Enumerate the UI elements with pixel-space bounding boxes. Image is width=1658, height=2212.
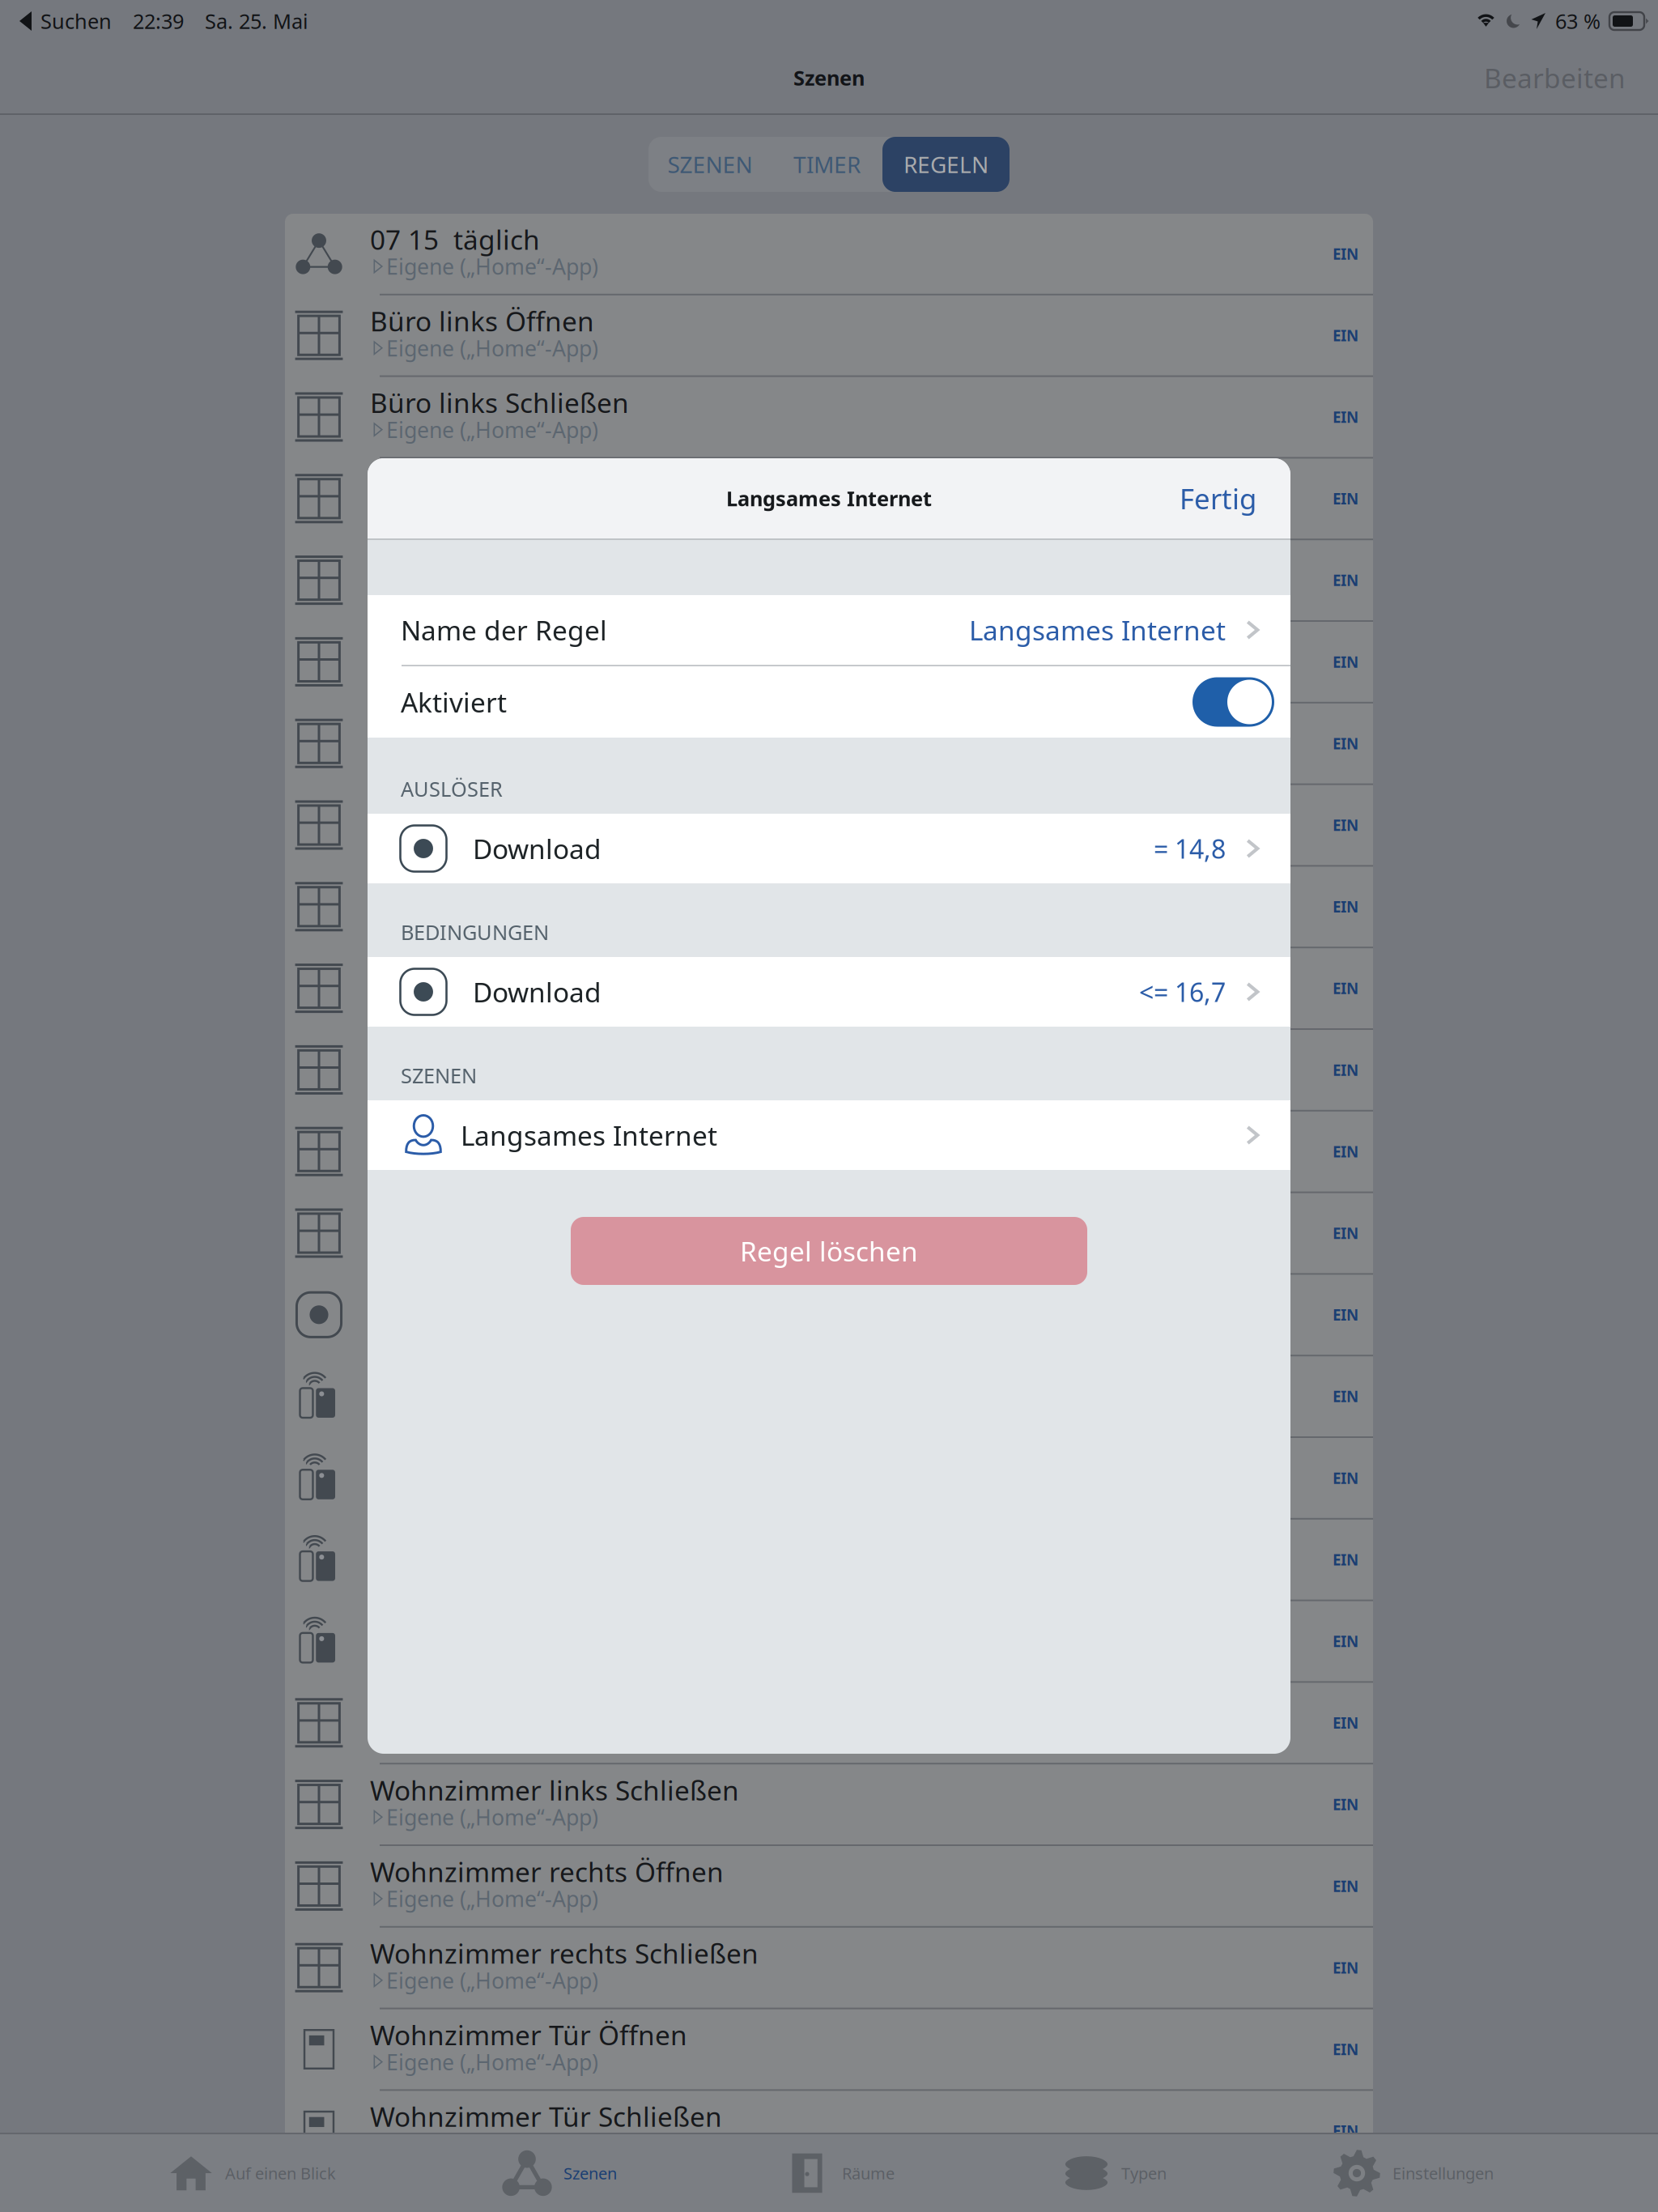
staticText: Büro links Öffnen — [370, 303, 594, 339]
button[interactable]: Wohnzimmer rechts Schließen — [285, 1928, 1373, 2008]
staticText: EIN — [1333, 570, 1358, 590]
button[interactable]: Küche rechts Öffnen — [285, 785, 1373, 865]
button[interactable]: Küche links Schließen — [285, 703, 1373, 783]
staticText: EIN — [1333, 489, 1358, 509]
staticText: EIN — [1333, 1223, 1358, 1243]
button[interactable]: Küche links Öffnen — [285, 622, 1373, 702]
button[interactable]: REGELN — [882, 137, 1010, 192]
staticText: BEDINGUNGEN — [401, 918, 549, 946]
button[interactable]: Bearbeiten — [1484, 42, 1658, 113]
button[interactable]: Wohnzimmer Tür Schließen — [285, 2091, 1373, 2171]
button[interactable]: 07 15 täglich — [285, 214, 1373, 294]
button[interactable]: Schlafzimmer Schließen — [285, 1030, 1373, 1110]
staticText: Küche links Schließen — [370, 711, 647, 747]
button[interactable]: Regel löschen — [571, 1217, 1087, 1285]
staticText: Wohnzimmer links Schließen — [370, 1772, 739, 1808]
button[interactable]: Küche rechts Schließen — [285, 867, 1373, 947]
staticText: <= 16,7 — [1139, 975, 1226, 1009]
button[interactable]: Wohnzimmer Tür Öffnen — [285, 2009, 1373, 2089]
button[interactable]: Wohnzimmer rechts Öffnen — [285, 1846, 1373, 1926]
staticText: Eigene („Home“-App) — [386, 252, 598, 281]
staticText: Langsames Internet — [726, 485, 932, 512]
staticText: Auf einen Blick — [225, 2162, 336, 2184]
button[interactable]: Büro links Öffnen — [285, 295, 1373, 375]
staticText: Eigene („Home“-App) — [386, 1803, 598, 1831]
staticText: Download — [473, 974, 602, 1010]
staticText: Aktiviert — [401, 684, 507, 720]
button[interactable]: Typen — [1063, 2134, 1306, 2212]
button[interactable]: Taster 1 Öffnen — [285, 1356, 1373, 1436]
staticText: 22:39 — [133, 7, 184, 35]
staticText: Wohnzimmer Tür Öffnen — [370, 2017, 687, 2053]
button[interactable]: Bad Schließen — [285, 1193, 1373, 1273]
staticText: EIN — [1333, 1631, 1358, 1651]
staticText: Eigene („Home“-App) — [386, 1966, 598, 1995]
button[interactable]: Wohnzimmer links Öffnen — [285, 1683, 1373, 1763]
button[interactable]: Name der Regel — [368, 595, 1290, 665]
staticText: Eigene („Home“-App) — [386, 415, 598, 444]
staticText: REGELN — [903, 149, 988, 179]
staticText: EIN — [1333, 325, 1358, 345]
button[interactable]: Büro rechts Öffnen — [285, 459, 1373, 539]
staticText: Wohnzimmer Tür Schließen — [370, 2098, 722, 2134]
button[interactable]: Fertig — [1180, 458, 1290, 538]
button[interactable]: Langsames Internet — [368, 1100, 1290, 1170]
staticText: Regel löschen — [740, 1233, 918, 1269]
button[interactable]: Taster 3 Öffnen — [285, 1520, 1373, 1600]
button[interactable]: Taster 4 Öffnen — [285, 1601, 1373, 1681]
staticText: Bearbeiten — [1484, 60, 1626, 96]
button[interactable]: SZENEN — [648, 137, 772, 192]
staticText: EIN — [1333, 1794, 1358, 1814]
button[interactable]: Einstellungen — [1333, 2134, 1575, 2212]
staticText: Einstellungen — [1392, 2162, 1494, 2184]
staticText: Eigene („Home“-App) — [386, 1231, 598, 1260]
staticText: EIN — [1333, 1305, 1358, 1325]
button[interactable]: Auf einen Blick — [168, 2134, 411, 2212]
button[interactable]: Wohnzimmer links Schließen — [285, 1764, 1373, 1844]
button[interactable]: Download — [368, 957, 1290, 1027]
staticText: EIN — [1333, 1713, 1358, 1733]
staticText: Eigene („Home“-App) — [386, 334, 598, 362]
button[interactable]: Schlafzimmer Öffnen — [285, 948, 1373, 1028]
staticText: EIN — [1333, 1386, 1358, 1406]
button[interactable]: Taster 2 Öffnen — [285, 1438, 1373, 1518]
staticText: Wohnzimmer rechts Schließen — [370, 1935, 759, 1971]
button[interactable]: Download — [368, 814, 1290, 883]
staticText: EIN — [1333, 407, 1358, 427]
button[interactable]: Bad Öffnen — [285, 1112, 1373, 1192]
button[interactable]: Büro rechts Schließen — [285, 540, 1373, 620]
button[interactable]: Büro links Schließen — [285, 377, 1373, 457]
staticText: Langsames Internet — [969, 612, 1226, 648]
staticText: Eigene („Home“-App) — [386, 905, 598, 934]
button[interactable]: Szenen — [502, 2134, 745, 2212]
staticText: EIN — [1333, 1550, 1358, 1570]
staticText: EIN — [1333, 897, 1358, 917]
staticText: EIN — [1333, 733, 1358, 753]
staticText: EIN — [1333, 1141, 1358, 1162]
staticText: SZENEN — [401, 1062, 477, 1089]
staticText: Sa. 25. Mai — [205, 7, 308, 35]
staticText: EIN — [1333, 244, 1358, 264]
button[interactable]: Bewegung Flur — [285, 1275, 1373, 1355]
button[interactable]: TIMER — [772, 137, 882, 192]
staticText: Suchen — [40, 7, 112, 35]
staticText: Küche rechts Öffnen — [370, 793, 631, 829]
staticText: Eigene („Home“-App) — [386, 1884, 598, 1913]
button[interactable]: Räume — [784, 2134, 1027, 2212]
staticText: Eigene („Home“-App) — [386, 660, 598, 689]
button[interactable]: Aktiviert — [1192, 677, 1274, 727]
staticText: Szenen — [563, 2162, 617, 2184]
